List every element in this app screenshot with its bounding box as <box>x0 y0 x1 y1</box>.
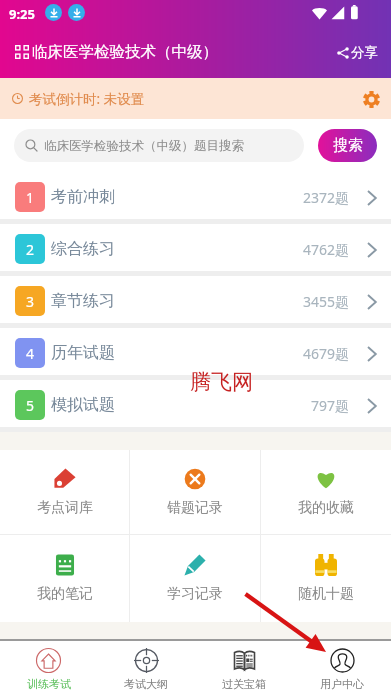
staticText: 4679题 <box>303 344 350 363</box>
staticText: 章节练习 <box>51 291 115 311</box>
button[interactable]: 4 <box>0 328 391 375</box>
staticText: 腾飞网 <box>190 369 253 395</box>
staticText: 797题 <box>311 396 350 415</box>
staticText: 历年试题 <box>51 343 115 363</box>
button[interactable]: 2 <box>0 224 391 271</box>
staticText: 临床医学检验技术（中级） <box>32 42 218 62</box>
staticText: 过关宝箱 <box>222 677 266 691</box>
button[interactable]: 搜索 <box>318 129 377 162</box>
staticText: 考点词库 <box>37 499 93 517</box>
staticText: 3455题 <box>303 292 350 311</box>
staticText: 模拟试题 <box>51 395 115 415</box>
staticText: 5 <box>26 396 35 415</box>
button[interactable]: 我的收藏 <box>261 450 391 534</box>
staticText: 用户中心 <box>320 677 364 691</box>
staticText: 综合练习 <box>51 239 115 259</box>
button[interactable]: 考点词库 <box>0 450 129 534</box>
staticText: 临床医学检验技术（中级）题目搜索 <box>44 138 244 154</box>
button[interactable]: 用户中心 <box>293 641 391 695</box>
staticText: 考试大纲 <box>124 677 168 691</box>
button[interactable]: 3 <box>0 276 391 323</box>
button[interactable]: 过关宝箱 <box>195 641 293 695</box>
button[interactable]: 1 <box>0 172 391 219</box>
staticText: 错题记录 <box>167 499 223 517</box>
button[interactable]: 5 <box>0 380 391 427</box>
button[interactable]: 随机十题 <box>261 535 391 622</box>
button[interactable]: 学习记录 <box>130 535 260 622</box>
staticText: 考前冲刺 <box>51 187 115 207</box>
staticText: 4762题 <box>303 240 350 259</box>
staticText: 我的笔记 <box>37 585 93 603</box>
button[interactable]: 训练考试 <box>0 641 97 695</box>
staticText: 搜索 <box>333 136 363 155</box>
staticText: 4 <box>26 344 35 363</box>
button[interactable]: 考试大纲 <box>97 641 195 695</box>
button[interactable]: 临床医学检验技术（中级）题目搜索 <box>14 129 304 162</box>
staticText: 随机十题 <box>298 585 354 603</box>
staticText: 1 <box>26 188 35 207</box>
staticText: 考试倒计时: 未设置 <box>29 90 145 108</box>
button[interactable]: 我的笔记 <box>0 535 129 622</box>
staticText: 2 <box>26 240 35 259</box>
staticText: 2372题 <box>303 188 350 207</box>
staticText: 我的收藏 <box>298 499 354 517</box>
staticText: 学习记录 <box>167 585 223 603</box>
staticText: 3 <box>26 292 35 311</box>
staticText: 训练考试 <box>27 677 71 691</box>
button[interactable]: 分享 <box>335 40 380 65</box>
staticText: 分享 <box>351 44 378 61</box>
button[interactable]: 设置 <box>358 86 384 112</box>
staticText: 9:25 <box>9 5 35 23</box>
button[interactable]: 错题记录 <box>130 450 260 534</box>
